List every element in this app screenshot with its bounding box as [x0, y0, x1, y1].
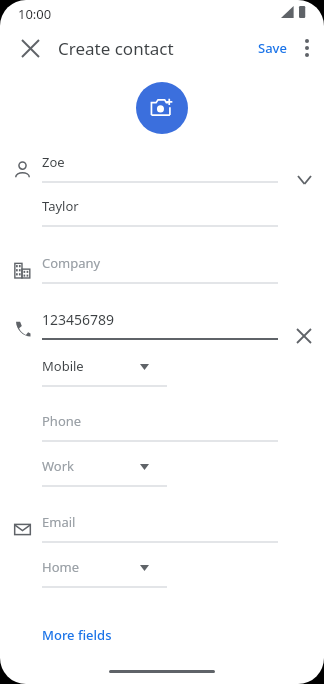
- button[interactable]: 123456789: [42, 307, 278, 341]
- staticText: Zoe: [42, 153, 65, 171]
- button[interactable]: Add photo: [136, 82, 188, 134]
- button[interactable]: Save: [248, 32, 296, 64]
- staticText: Save: [258, 39, 287, 57]
- button[interactable]: Close: [6, 24, 54, 72]
- staticText: Mobile: [42, 357, 84, 375]
- button[interactable]: More fields: [36, 622, 116, 648]
- staticText: Work: [42, 457, 75, 475]
- button[interactable]: Work: [42, 454, 167, 488]
- button[interactable]: Clear phone number: [288, 320, 320, 352]
- button[interactable]: Expand name: [288, 164, 320, 196]
- button[interactable]: Phone: [42, 409, 278, 443]
- staticText: Company: [42, 254, 101, 272]
- staticText: Email: [42, 513, 76, 531]
- button[interactable]: Mobile: [42, 354, 167, 388]
- button[interactable]: Company: [42, 251, 278, 285]
- staticText: 10:00: [18, 5, 52, 23]
- button[interactable]: Home: [42, 555, 167, 589]
- button[interactable]: Email: [42, 510, 278, 544]
- staticText: Create contact: [58, 37, 174, 60]
- staticText: 123456789: [42, 310, 115, 329]
- button[interactable]: More options: [289, 24, 324, 72]
- staticText: Phone: [42, 412, 82, 430]
- button[interactable]: Zoe: [42, 150, 278, 184]
- staticText: Taylor: [42, 197, 79, 215]
- button[interactable]: Taylor: [42, 194, 278, 228]
- staticText: Home: [42, 558, 79, 576]
- staticText: More fields: [42, 626, 112, 644]
